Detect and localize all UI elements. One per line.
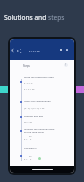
staticText: x = [24,157,28,160]
staticText: by the third value [24,130,44,133]
button[interactable]: Bookmark [58,47,64,53]
staticText: steps [48,13,65,22]
staticText: 2 [30,158,32,161]
staticText: x + y = 39 [24,87,35,90]
staticText: ? [65,63,67,67]
button[interactable]: Help [64,63,68,67]
staticText: Calculate x [24,146,37,149]
staticText: 3 [20,51,22,54]
staticText: Solutions and [4,13,48,22]
staticText: x [17,49,19,53]
staticText: 2x = 42 [24,120,32,123]
staticText: Write the proportion used [24,75,54,78]
staticText: Multiply the nominal value [24,127,55,130]
staticText: 42 [29,135,32,138]
button[interactable]: Steps [23,64,30,68]
button[interactable]: More options [64,47,70,53]
staticText: 42 [29,155,32,158]
staticText: x + y = 39 [29,49,40,52]
staticText: x - y = 3 [24,81,33,84]
staticText: 1 [20,48,22,51]
staticText: Simplify and add [24,114,44,117]
staticText: Apply the componendo [24,99,51,102]
staticText: x = [24,137,28,140]
staticText: (x - y) + (x + y) = 42 [24,106,45,109]
button[interactable]: Back [10,47,15,53]
staticText: 2 [30,138,32,141]
